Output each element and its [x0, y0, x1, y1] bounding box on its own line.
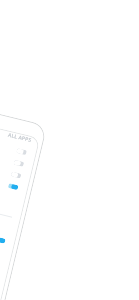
- button[interactable]: [0, 141, 35, 172]
- button[interactable]: [0, 129, 38, 160]
- button[interactable]: [0, 164, 29, 195]
- button[interactable]: [0, 218, 16, 249]
- staticText: ALL APPS: [7, 132, 32, 144]
- button[interactable]: [0, 153, 32, 184]
